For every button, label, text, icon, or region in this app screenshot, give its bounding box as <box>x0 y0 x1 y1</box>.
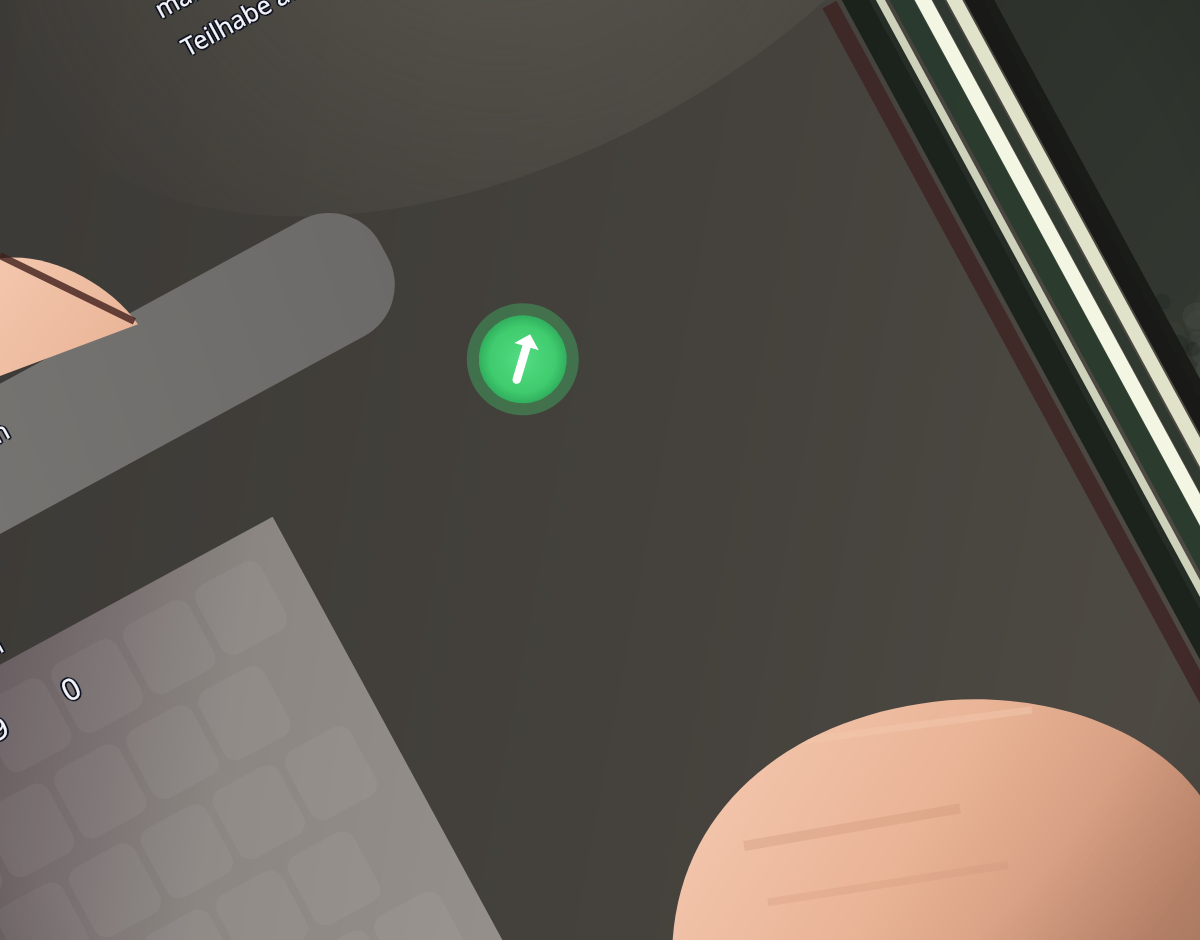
button[interactable]: Chat screen on phone held in hand <box>0 0 1200 940</box>
other: Chat screen on phone held in hand <box>0 0 1200 940</box>
